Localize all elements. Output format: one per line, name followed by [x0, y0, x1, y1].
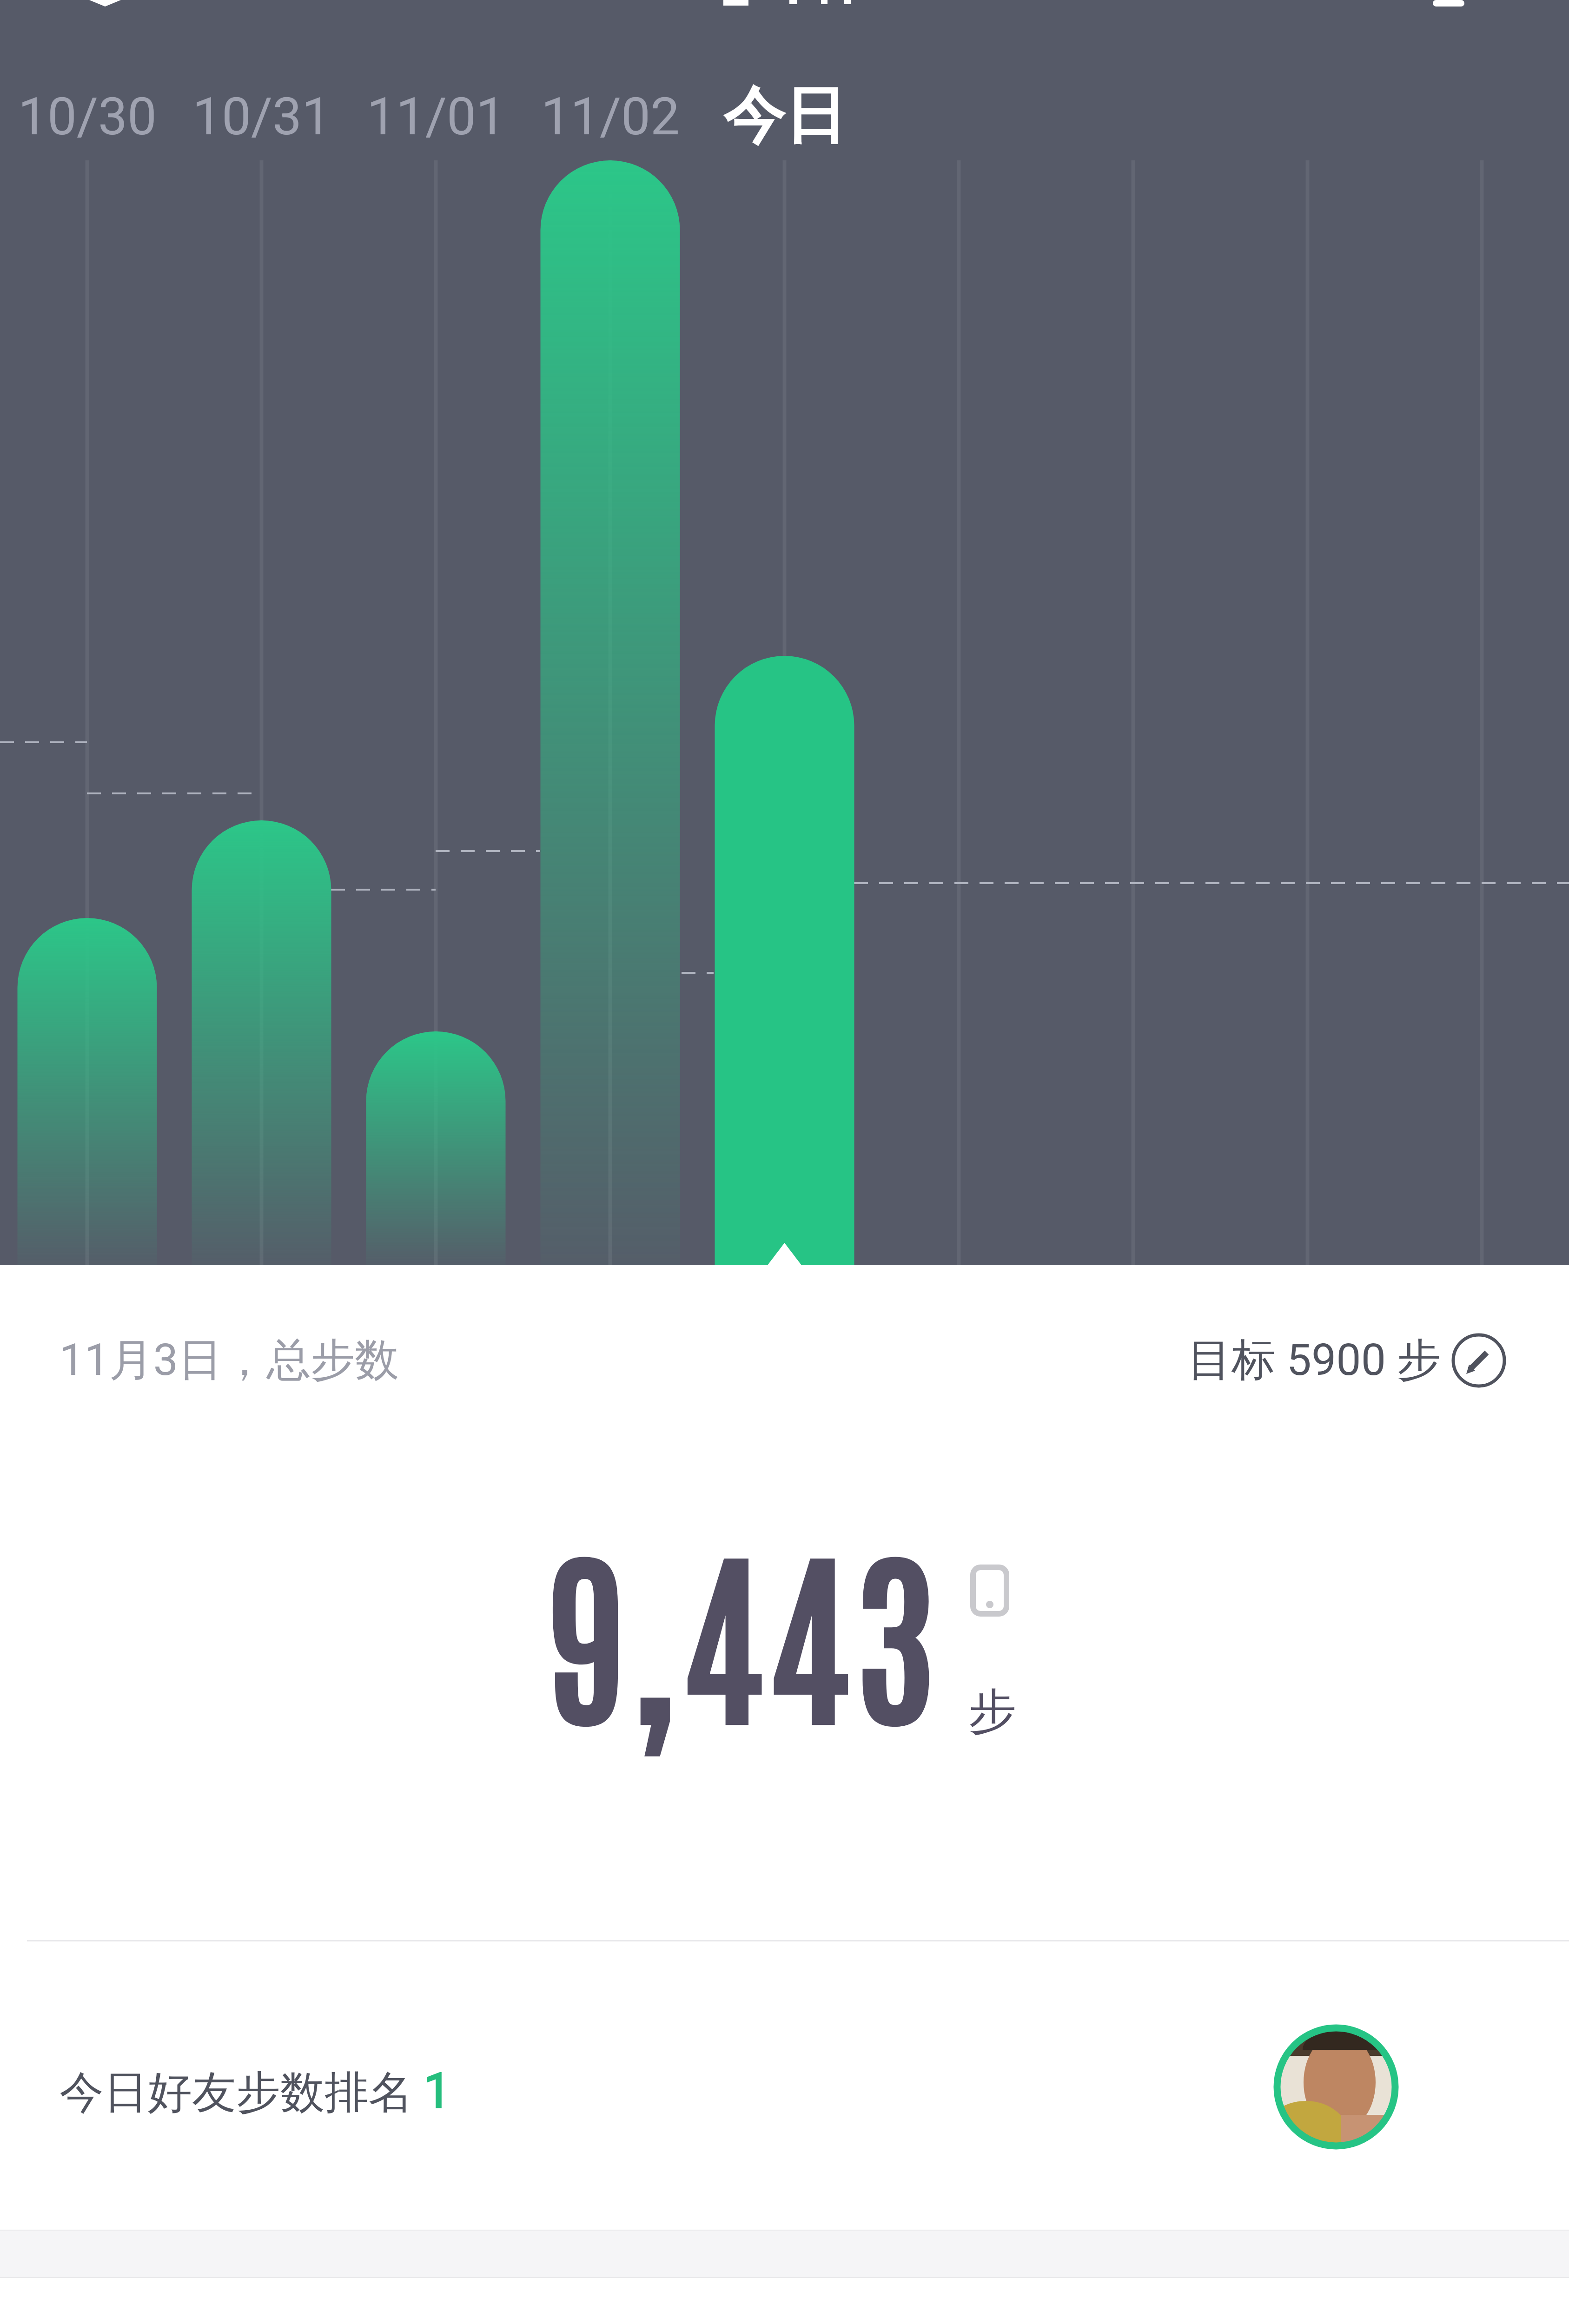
- staticText: 目标 5900 步: [1187, 1333, 1441, 1388]
- staticText: 步: [968, 1682, 1016, 1742]
- staticText: 11/02: [541, 86, 680, 147]
- staticText: 10/31: [192, 86, 331, 147]
- staticText: 今日好友步数排名 1: [60, 2063, 451, 2120]
- staticText: 11月3日，总步数: [60, 1333, 399, 1388]
- button[interactable]: 11月3日，总步数: [0, 1288, 1569, 1433]
- button[interactable]: 今日好友步数排名 1: [0, 2013, 1569, 2171]
- staticText: 今日: [723, 78, 846, 155]
- staticText: 9,443: [546, 1506, 942, 1748]
- staticText: 10/30: [18, 86, 157, 147]
- staticText: 11/01: [367, 86, 505, 147]
